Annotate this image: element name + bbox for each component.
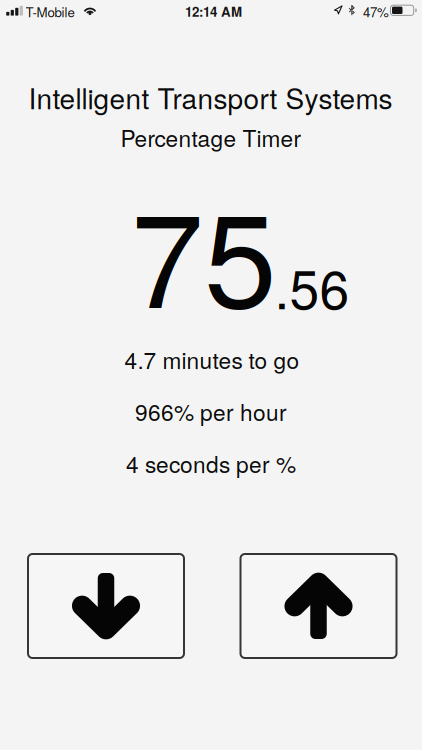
staticText: 47%	[363, 2, 389, 21]
staticText: 12:14 AM	[185, 2, 242, 21]
staticText: Percentage Timer	[120, 121, 301, 153]
staticText: 4 seconds per %	[126, 447, 296, 479]
staticText: Intelligent Transport Systems	[28, 77, 392, 117]
staticText: .56	[274, 248, 349, 324]
staticText: T-Mobile	[25, 2, 74, 21]
staticText: 75	[131, 158, 277, 345]
button[interactable]: Increase percentage	[240, 554, 396, 658]
button[interactable]: Decrease percentage	[28, 554, 184, 658]
staticText: 4.7 minutes to go	[124, 343, 299, 375]
staticText: 966% per hour	[135, 395, 287, 427]
